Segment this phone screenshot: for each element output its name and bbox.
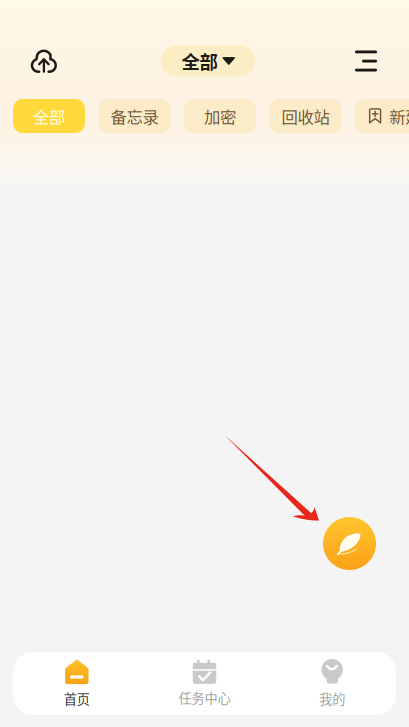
button[interactable]: 任务中心: [141, 652, 268, 715]
staticText: 全部: [33, 104, 65, 128]
staticText: 全部: [181, 48, 217, 74]
staticText: 首页: [64, 689, 90, 708]
button[interactable]: 新建: [355, 99, 409, 133]
button[interactable]: 全部: [161, 45, 255, 76]
staticText: 加密: [204, 104, 236, 128]
button[interactable]: 回收站: [269, 99, 341, 133]
button[interactable]: New note: [323, 517, 376, 570]
staticText: 回收站: [281, 104, 329, 128]
button[interactable]: Menu: [342, 41, 395, 80]
button[interactable]: 加密: [184, 99, 256, 133]
staticText: 新建: [389, 104, 409, 128]
button[interactable]: 全部: [13, 99, 85, 133]
button[interactable]: 我的: [268, 651, 396, 716]
button[interactable]: 备忘录: [98, 99, 170, 133]
button[interactable]: Upload to cloud: [14, 41, 74, 81]
button[interactable]: 首页: [13, 651, 141, 716]
staticText: 我的: [319, 689, 345, 708]
staticText: 备忘录: [110, 104, 158, 128]
staticText: 任务中心: [178, 688, 230, 707]
